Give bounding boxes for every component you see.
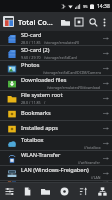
button[interactable]: Panel view bbox=[72, 15, 86, 29]
button[interactable]: Downloaded files bbox=[0, 76, 112, 91]
staticText: 9.60 / 29.70 bbox=[21, 55, 41, 60]
button[interactable]: Photos bbox=[0, 61, 112, 76]
button[interactable]: Bookmarks bbox=[0, 106, 112, 121]
staticText: Totalbox bbox=[21, 136, 44, 144]
staticText: //LAN bbox=[91, 175, 101, 180]
button[interactable]: New file bbox=[18, 183, 36, 200]
button[interactable]: Multi bbox=[93, 183, 112, 200]
button[interactable]: WLAN-Transfer bbox=[0, 151, 112, 166]
button[interactable]: Search bbox=[86, 15, 100, 29]
button[interactable]: Sort bbox=[0, 183, 18, 200]
staticText: LAN (Windows-Freigaben) bbox=[21, 166, 89, 174]
staticText: /storage/emulated/0/download bbox=[47, 85, 101, 90]
staticText: File system root bbox=[21, 91, 63, 99]
button[interactable]: More options bbox=[100, 15, 109, 29]
staticText: /storage/emulated/0 bbox=[44, 40, 101, 45]
button[interactable]: Properties bbox=[74, 183, 93, 200]
button[interactable]: FTP (Dateitransfers) bbox=[0, 181, 112, 183]
button[interactable]: Open folder bbox=[58, 15, 72, 29]
staticText: //wifitransfer bbox=[78, 160, 101, 165]
staticText: / bbox=[44, 100, 101, 105]
button[interactable]: LAN (Windows-Freigaben) bbox=[0, 166, 112, 181]
staticText: Downloaded files bbox=[21, 76, 67, 84]
staticText: SD-card (2) bbox=[21, 46, 50, 54]
staticText: //totalbox bbox=[84, 145, 101, 150]
staticText: 28.0 / 11.85 bbox=[21, 40, 41, 45]
staticText: 95 bbox=[83, 4, 88, 9]
staticText: Installed apps bbox=[21, 124, 58, 132]
button[interactable]: New folder bbox=[36, 183, 55, 200]
staticText: Photos bbox=[21, 61, 40, 69]
staticText: /storage/extSdCard bbox=[44, 55, 101, 60]
button[interactable]: Totalbox bbox=[0, 136, 112, 151]
staticText: SD-card bbox=[21, 31, 42, 39]
button[interactable]: SD-card (2) bbox=[0, 46, 112, 61]
staticText: Total Com... bbox=[18, 17, 58, 27]
button[interactable]: SD-card bbox=[0, 31, 112, 46]
staticText: WLAN-Transfer bbox=[21, 151, 61, 159]
button[interactable]: File system root bbox=[0, 91, 112, 106]
button[interactable]: Installed apps bbox=[0, 121, 112, 136]
staticText: 14:38 bbox=[97, 3, 110, 10]
button[interactable]: Select bbox=[55, 183, 74, 200]
staticText: Bookmarks bbox=[21, 109, 51, 117]
staticText: /storage/extSdCard/DCIM/Camera bbox=[43, 70, 101, 75]
staticText: 28.0 / 11.85 bbox=[21, 100, 41, 105]
button[interactable]: App icon bbox=[3, 16, 14, 27]
